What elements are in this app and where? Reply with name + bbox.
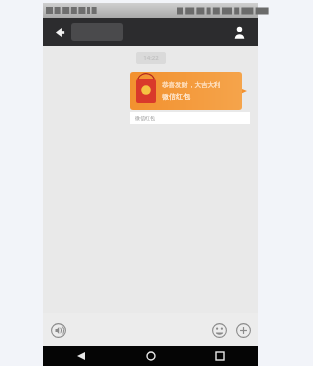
- button[interactable]: Back: [49, 22, 69, 42]
- button[interactable]: Voice input: [48, 320, 68, 340]
- button[interactable]: Emoji: [209, 320, 229, 340]
- button[interactable]: 微信红包: [130, 112, 250, 124]
- button[interactable]: 恭喜发财，大吉大利: [130, 72, 242, 110]
- button[interactable]: Home: [143, 348, 159, 364]
- button[interactable]: Recent apps: [212, 348, 228, 364]
- staticText: 微信红包: [135, 115, 155, 121]
- staticText: 恭喜发财，大吉大利: [162, 81, 221, 89]
- staticText: 微信红包: [162, 92, 190, 101]
- button[interactable]: More options: [233, 320, 253, 340]
- button[interactable]: Contact info: [228, 21, 250, 43]
- button[interactable]: Back: [73, 348, 89, 364]
- staticText: 14:22: [143, 54, 159, 62]
